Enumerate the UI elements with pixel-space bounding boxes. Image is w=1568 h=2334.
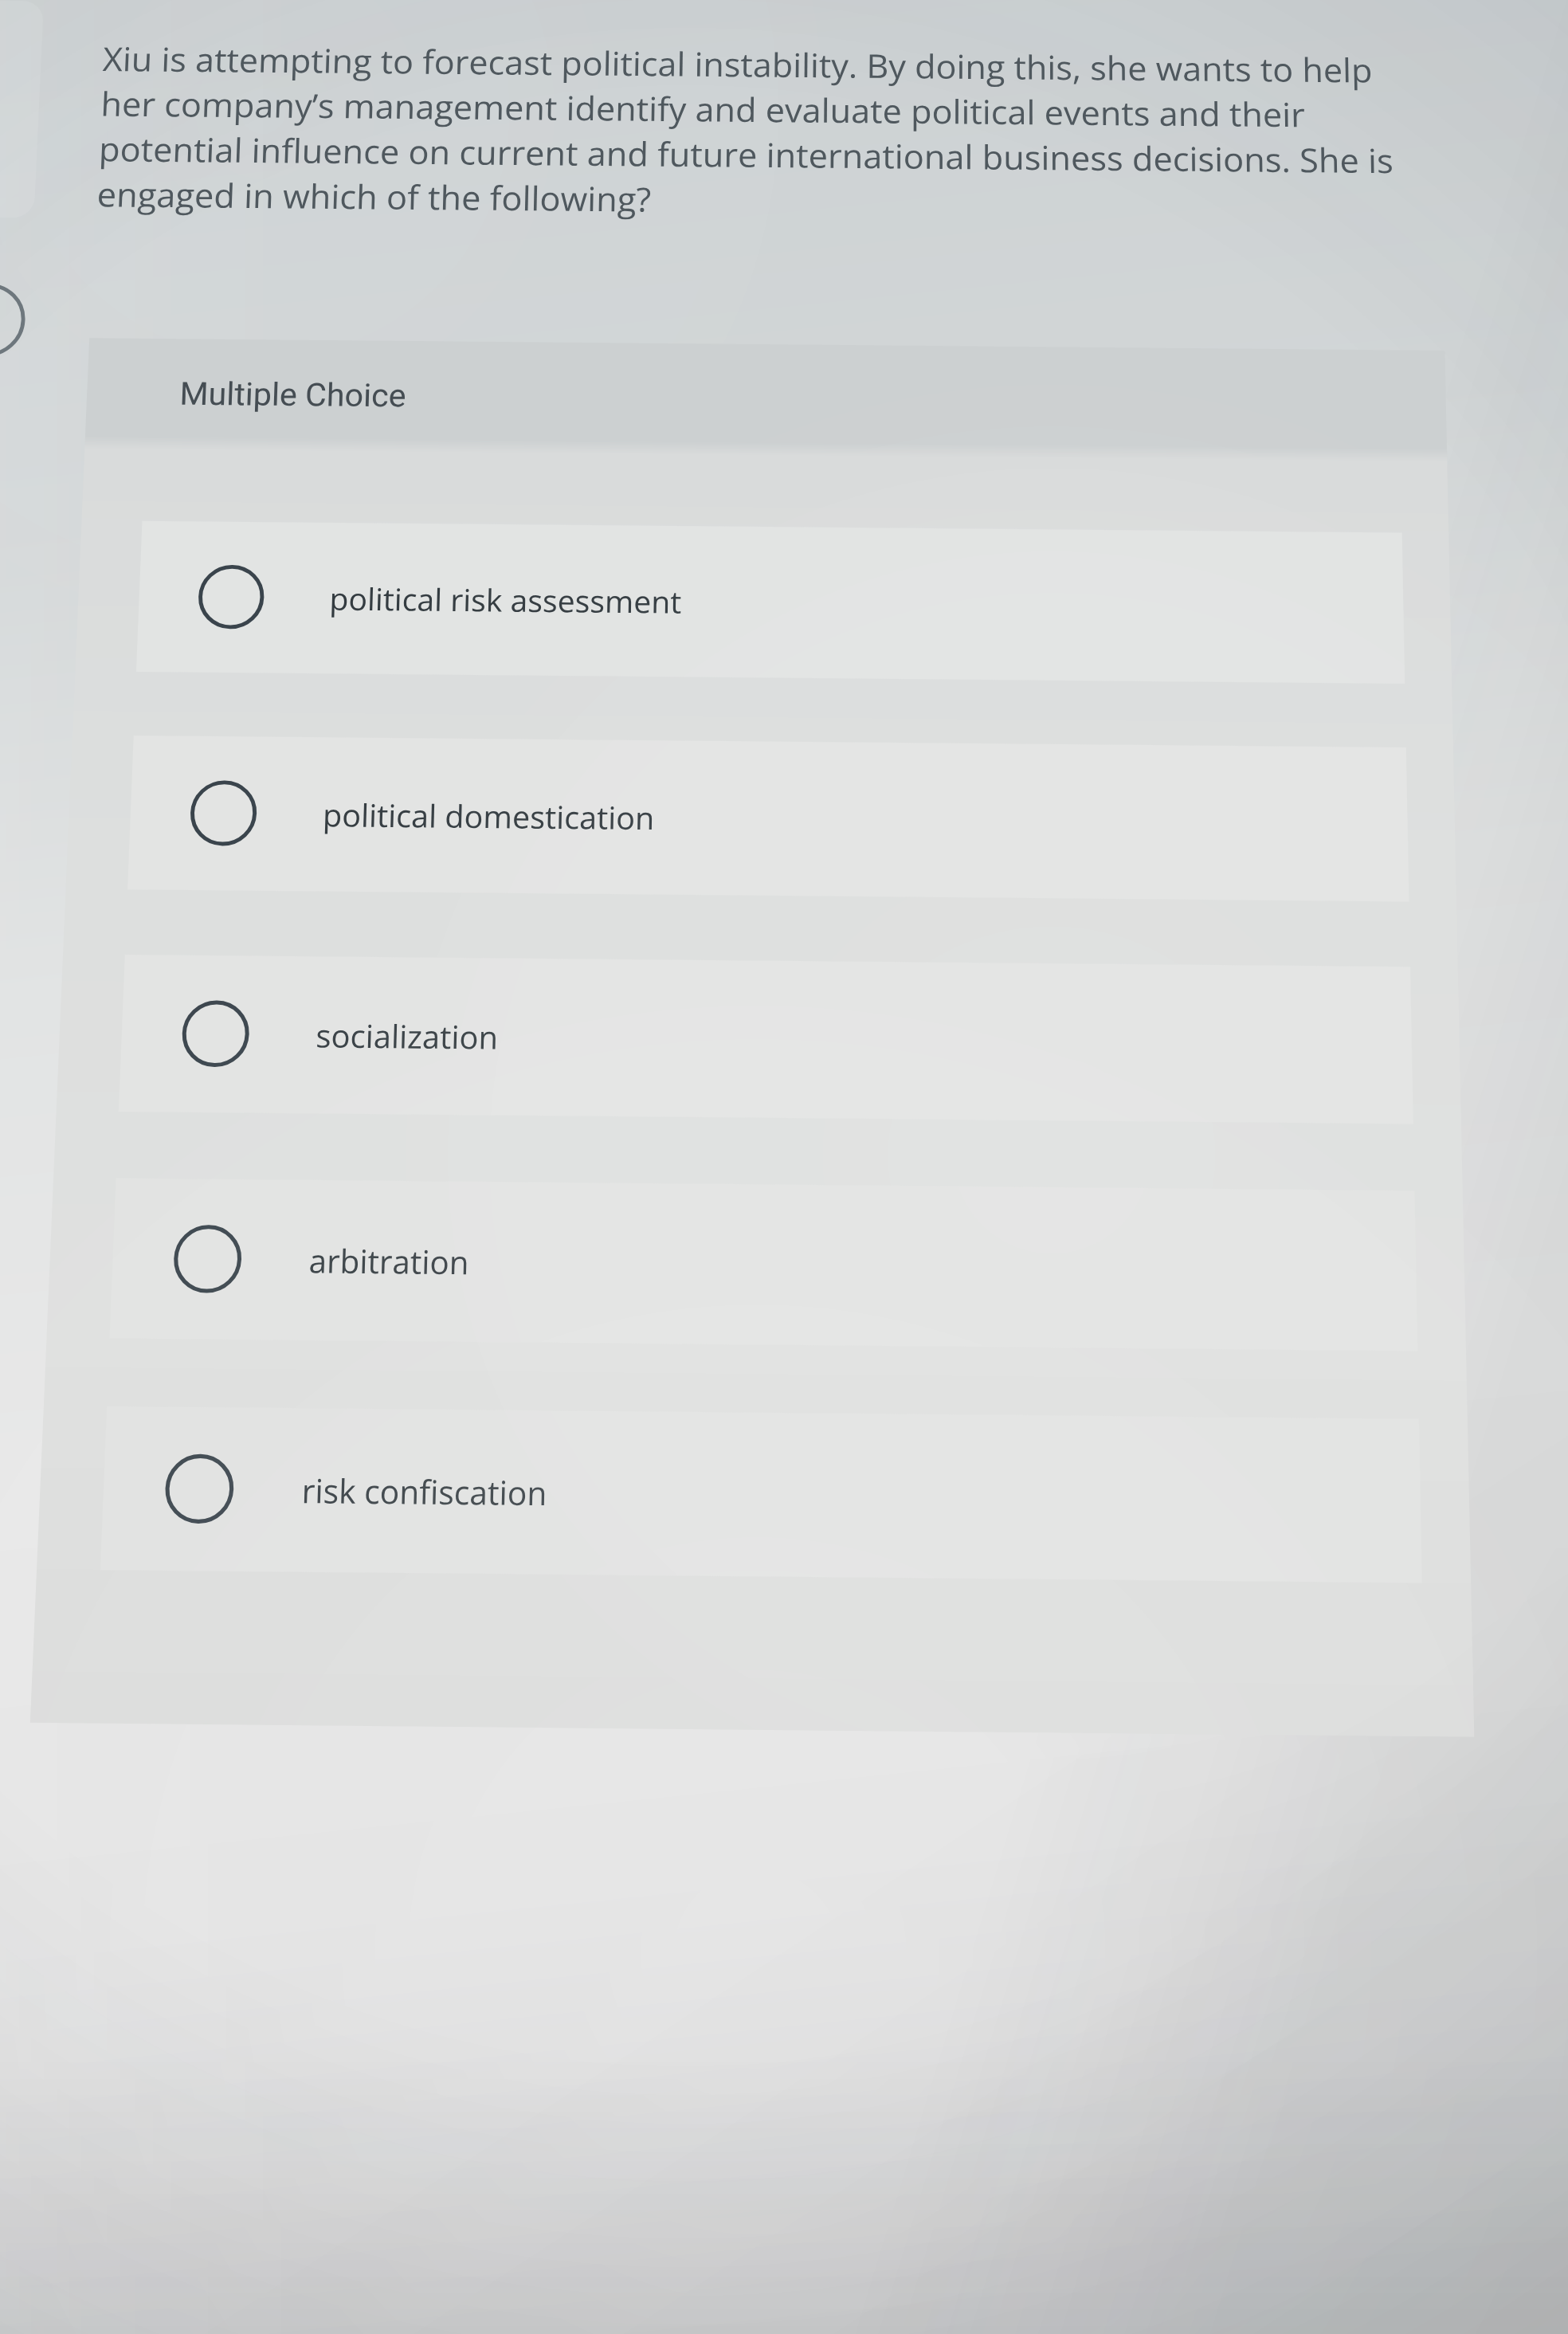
staticText: Multiple Choice bbox=[179, 375, 407, 415]
button[interactable]: Select political domestication bbox=[127, 736, 1409, 902]
staticText: political risk assessment bbox=[329, 577, 682, 622]
button[interactable]: Select risk confiscation bbox=[100, 1406, 1422, 1583]
staticText: socialization bbox=[315, 1013, 499, 1058]
staticText: Xiu is attempting to forecast political … bbox=[102, 36, 1373, 93]
button[interactable]: Select arbitration bbox=[110, 1178, 1418, 1351]
button[interactable]: Select political risk assessment bbox=[136, 521, 1405, 684]
staticText: her company’s management identify and ev… bbox=[100, 81, 1306, 137]
staticText: political domestication bbox=[322, 793, 655, 838]
staticText: risk confiscation bbox=[301, 1467, 548, 1514]
staticText: potential influence on current and futur… bbox=[98, 126, 1394, 183]
staticText: engaged in which of the following? bbox=[96, 171, 652, 222]
button[interactable]: Select socialization bbox=[119, 955, 1413, 1124]
staticText: arbitration bbox=[308, 1238, 470, 1283]
